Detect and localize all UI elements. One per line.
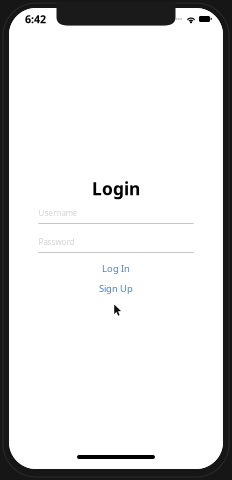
staticText: Username	[38, 208, 77, 218]
button[interactable]: Log In	[38, 262, 193, 275]
staticText: Log In	[102, 262, 130, 275]
button[interactable]: Sign Up	[38, 282, 193, 295]
staticText: Sign Up	[99, 282, 133, 295]
staticText: Login	[92, 177, 140, 200]
staticText: Password	[38, 237, 74, 247]
staticText: 6:42	[25, 12, 46, 26]
